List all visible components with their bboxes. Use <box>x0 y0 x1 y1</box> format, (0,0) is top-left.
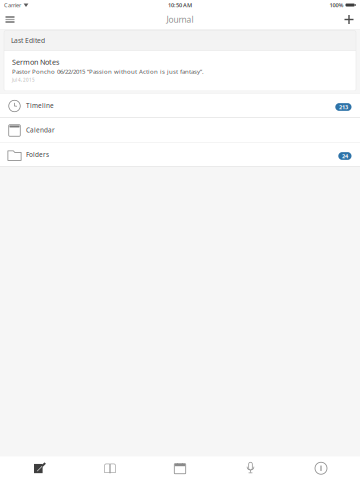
staticText: Last Edited <box>11 36 45 45</box>
button[interactable]: Calendar <box>0 118 360 142</box>
staticText: Folders <box>26 150 49 159</box>
staticText: Carrier <box>4 1 21 9</box>
staticText: 24 <box>342 152 348 160</box>
staticText: 213 <box>339 103 348 111</box>
button[interactable]: Folders <box>0 142 360 166</box>
button[interactable]: Menu <box>0 10 20 29</box>
button[interactable]: Compose <box>0 456 72 480</box>
button[interactable]: Sermon Notes <box>4 51 356 91</box>
staticText: 10:50 AM <box>168 1 192 9</box>
button[interactable]: Calendar <box>144 456 216 480</box>
staticText: Jul 4, 2015 <box>12 77 35 83</box>
staticText: Sermon Notes <box>12 57 59 67</box>
button[interactable]: Record <box>216 456 288 480</box>
button[interactable]: Read <box>72 456 144 480</box>
staticText: 100% <box>329 1 343 9</box>
button[interactable]: Timeline <box>0 93 360 117</box>
button[interactable]: New entry <box>339 10 359 29</box>
staticText: Journal <box>166 14 193 25</box>
button[interactable]: Info <box>288 456 360 480</box>
staticText: Pastor Poncho 06/22/2015 “Passion withou… <box>12 67 204 76</box>
staticText: Calendar <box>26 126 55 134</box>
staticText: Timeline <box>26 101 54 110</box>
